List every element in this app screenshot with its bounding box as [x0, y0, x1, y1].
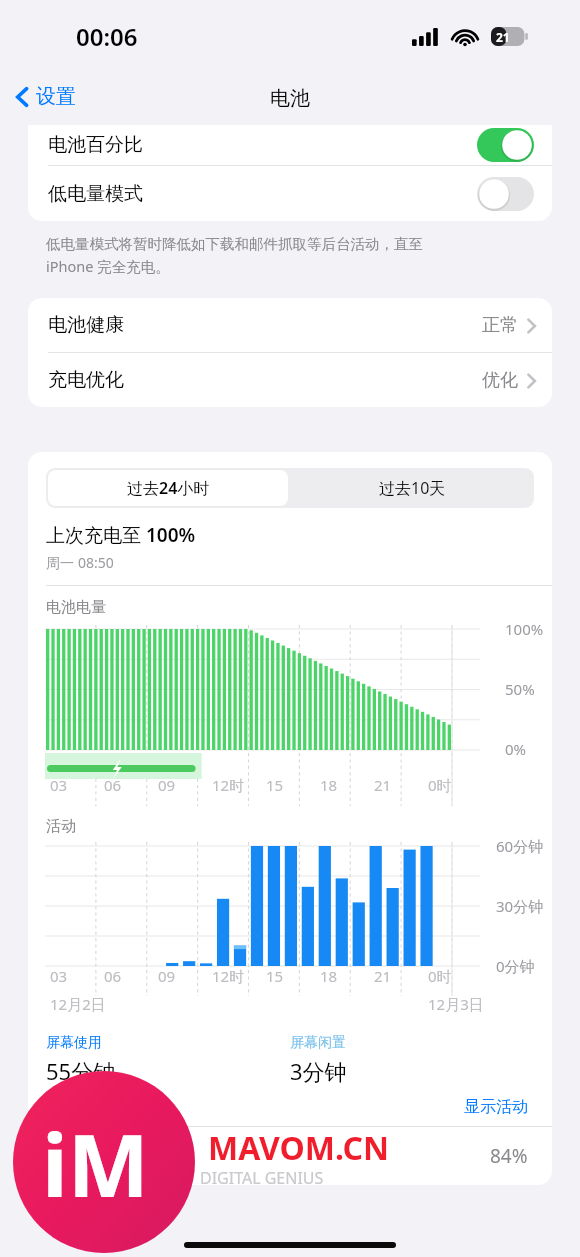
button[interactable]: 显示活动 — [460, 1093, 532, 1121]
button[interactable]: 过去10天 — [290, 468, 534, 508]
button[interactable] — [477, 177, 534, 211]
staticText: 60分钟 — [496, 836, 544, 856]
staticText: DIGITAL GENIUS — [200, 1167, 324, 1189]
staticText: iPhone 完全充电。 — [46, 256, 170, 276]
staticText: 过去24小时 — [127, 477, 210, 499]
staticText: iM — [42, 1105, 149, 1222]
staticText: 21 — [374, 775, 392, 795]
staticText: 18 — [320, 775, 338, 795]
staticText: 设置 — [36, 84, 76, 109]
staticText: 0时 — [428, 775, 452, 795]
staticText: 06 — [104, 775, 122, 795]
staticText: 09 — [158, 966, 176, 986]
staticText: 电池百分比 — [48, 133, 143, 157]
staticText: MAVOM.CN — [208, 1126, 389, 1170]
staticText: 屏幕使用 — [46, 1034, 102, 1052]
staticText: 03 — [50, 966, 68, 986]
staticText: 3分钟 — [290, 1056, 347, 1086]
staticText: 优化 — [482, 369, 518, 392]
staticText: 0时 — [428, 966, 452, 986]
staticText: 50% — [505, 679, 535, 699]
staticText: 06 — [104, 966, 122, 986]
staticText: 正常 — [482, 314, 518, 337]
staticText: 03 — [50, 775, 68, 795]
button[interactable] — [477, 128, 534, 162]
staticText: 0分钟 — [496, 956, 535, 976]
staticText: 显示活动 — [464, 1097, 528, 1117]
staticText: 21 — [496, 29, 510, 45]
staticText: 12时 — [212, 966, 245, 986]
staticText: 21 — [374, 966, 392, 986]
staticText: 08:50 — [78, 553, 114, 572]
staticText: 15 — [266, 775, 284, 795]
staticText: 低电量模式 — [48, 182, 143, 206]
staticText: 18 — [320, 966, 338, 986]
staticText: 屏幕闲置 — [290, 1034, 346, 1052]
staticText: 上次充电至 100% — [46, 522, 196, 548]
staticText: 过去10天 — [379, 477, 446, 499]
staticText: 15 — [266, 966, 284, 986]
staticText: 12时 — [212, 775, 245, 795]
staticText: 12月2日 — [50, 994, 106, 1014]
staticText: 低电量模式将暂时降低如下载和邮件抓取等后台活动，直至 — [46, 235, 423, 253]
staticText: 电池健康 — [48, 313, 124, 337]
staticText: 84% — [490, 1143, 528, 1169]
staticText: 30分钟 — [496, 896, 544, 916]
staticText: 12月3日 — [428, 994, 484, 1014]
staticText: 周一 — [46, 553, 78, 572]
button[interactable]: 低电量模式 — [28, 166, 552, 221]
button[interactable]: 充电优化 — [28, 353, 552, 407]
staticText: 00:06 — [76, 20, 138, 53]
staticText: 55分钟 — [46, 1056, 116, 1086]
staticText: 09 — [158, 775, 176, 795]
staticText: 电池电量 — [46, 598, 106, 617]
staticText: 100% — [505, 619, 544, 639]
button[interactable]: 电池健康 — [28, 298, 552, 352]
button[interactable]: 过去24小时 — [48, 470, 288, 506]
staticText: 活动 — [46, 817, 76, 836]
staticText: 0% — [505, 739, 527, 759]
staticText: 充电优化 — [48, 368, 124, 392]
staticText: 电池 — [270, 86, 310, 111]
button[interactable]: 设置 — [8, 80, 84, 113]
button[interactable]: 电池百分比 — [28, 125, 552, 165]
